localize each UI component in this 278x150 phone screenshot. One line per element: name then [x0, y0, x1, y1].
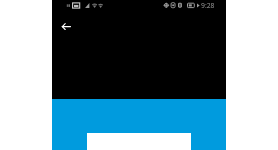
- staticText: 9:28: [201, 1, 215, 10]
- button[interactable]: Back: [56, 17, 78, 39]
- button[interactable]: Continue: [52, 99, 226, 150]
